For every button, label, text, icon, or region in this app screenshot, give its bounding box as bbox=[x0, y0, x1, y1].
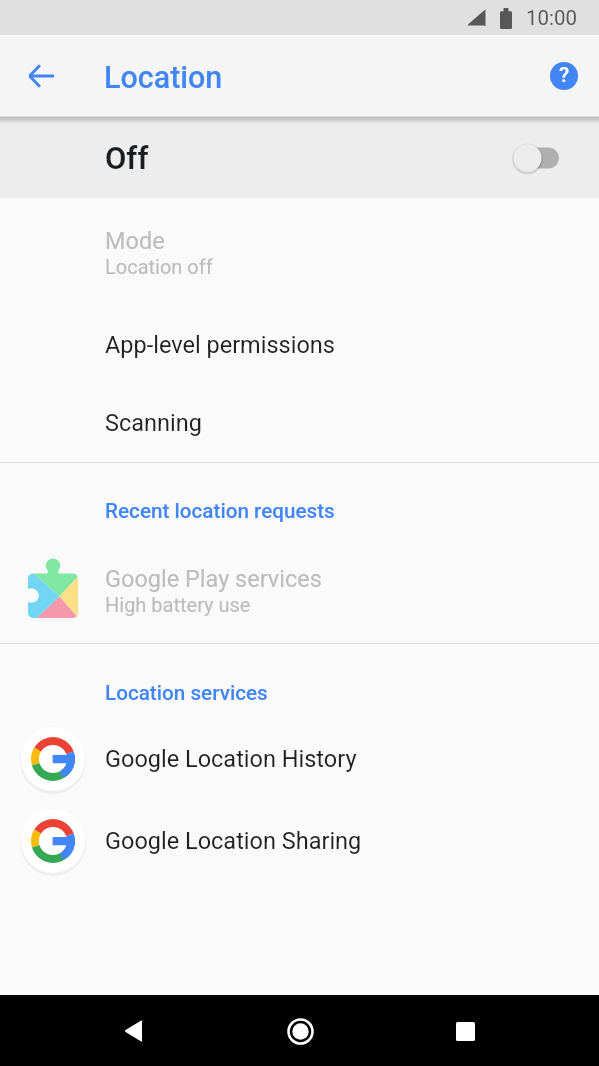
button[interactable]: Off bbox=[0, 117, 599, 198]
staticText: Location services bbox=[105, 681, 268, 705]
button[interactable]: Home bbox=[268, 999, 332, 1063]
button[interactable]: App-level permissions bbox=[0, 306, 599, 384]
staticText: Google Play services bbox=[105, 565, 322, 593]
button[interactable]: Google Location History bbox=[0, 718, 599, 800]
button[interactable]: Back bbox=[102, 999, 166, 1063]
staticText: App-level permissions bbox=[105, 331, 335, 359]
button[interactable]: Scanning bbox=[0, 384, 599, 462]
staticText: Recent location requests bbox=[105, 499, 335, 523]
staticText: Google Location History bbox=[105, 745, 357, 773]
button[interactable]: Navigate up bbox=[9, 44, 73, 108]
button[interactable]: Help bbox=[536, 48, 592, 104]
staticText: Location bbox=[104, 60, 223, 96]
button[interactable]: Use location bbox=[506, 136, 578, 180]
staticText: Mode bbox=[105, 227, 165, 255]
staticText: ? bbox=[559, 63, 570, 88]
staticText: Google Location Sharing bbox=[105, 827, 362, 855]
button[interactable]: Google Play services bbox=[0, 544, 599, 636]
button[interactable]: Google Location Sharing bbox=[0, 800, 599, 882]
button[interactable]: Mode bbox=[0, 215, 599, 290]
staticText: Location off bbox=[105, 255, 213, 278]
staticText: High battery use bbox=[105, 593, 251, 616]
staticText: Scanning bbox=[105, 409, 202, 437]
staticText: Off bbox=[105, 140, 149, 176]
staticText: 10:00 bbox=[526, 6, 578, 30]
button[interactable]: Recent apps bbox=[433, 999, 497, 1063]
